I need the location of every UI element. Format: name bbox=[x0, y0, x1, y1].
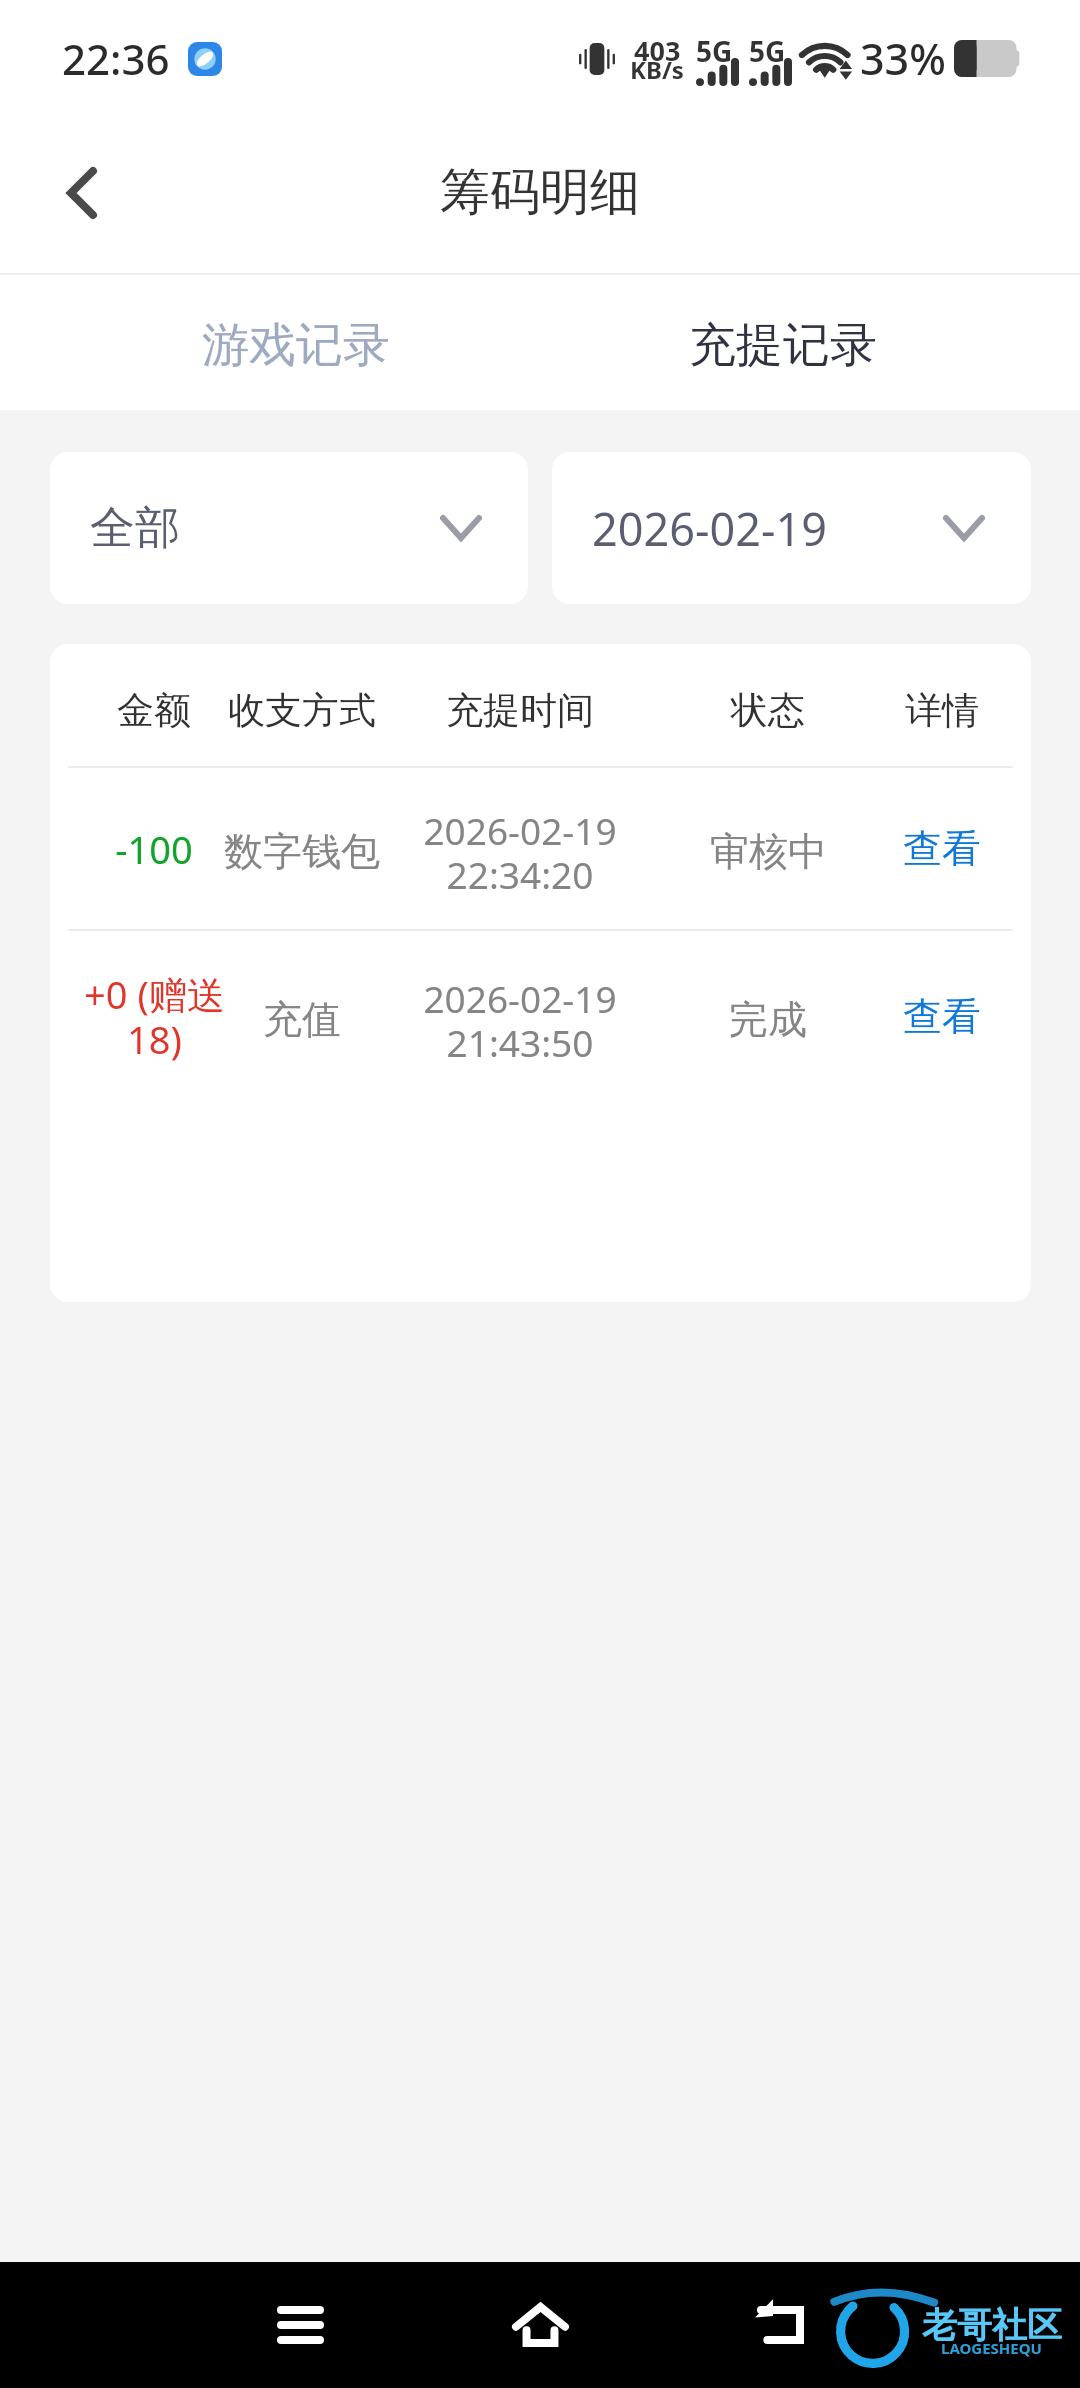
staticText: 数字钱包 bbox=[224, 827, 380, 876]
staticText: 状态 bbox=[731, 687, 805, 734]
staticText: 5G bbox=[696, 32, 733, 70]
button[interactable]: 查看 bbox=[847, 931, 1031, 1101]
staticText: 5G bbox=[749, 32, 786, 70]
staticText: +0 (赠送 18) bbox=[84, 968, 225, 1065]
button[interactable]: Home bbox=[480, 2265, 600, 2385]
staticText: 22:36 bbox=[62, 30, 170, 87]
staticText: KB/s bbox=[630, 53, 684, 86]
button[interactable]: -100 bbox=[50, 768, 1031, 929]
staticText: 查看 bbox=[903, 824, 981, 873]
staticText: 查看 bbox=[903, 992, 981, 1041]
staticText: 403 bbox=[634, 32, 681, 69]
button[interactable]: Back bbox=[2, 112, 162, 273]
staticText: 详情 bbox=[905, 687, 979, 734]
staticText: 充值 bbox=[263, 995, 341, 1044]
staticText: 金额 bbox=[117, 687, 191, 734]
button[interactable]: +0 (赠送 18) bbox=[50, 931, 1031, 1101]
staticText: 充提时间 bbox=[446, 687, 594, 734]
staticText: 老哥社区 bbox=[922, 2303, 1062, 2347]
button[interactable]: 充提记录 bbox=[543, 275, 1023, 410]
staticText: 充提记录 bbox=[689, 316, 877, 375]
button[interactable]: 查看 bbox=[847, 768, 1031, 929]
button[interactable]: Back bbox=[720, 2265, 840, 2385]
staticText: 33% bbox=[860, 29, 946, 88]
staticText: 全部 bbox=[90, 500, 180, 557]
button[interactable]: Recents bbox=[240, 2265, 360, 2385]
staticText: 完成 bbox=[729, 995, 807, 1044]
button[interactable]: 全部 bbox=[50, 452, 528, 604]
staticText: 审核中 bbox=[710, 827, 827, 876]
staticText: LAOGESHEQU bbox=[941, 2338, 1042, 2358]
staticText: 筹码明细 bbox=[440, 161, 640, 224]
button[interactable]: 2026-02-19 bbox=[552, 452, 1031, 604]
staticText: -100 bbox=[115, 823, 193, 875]
staticText: 收支方式 bbox=[228, 687, 376, 734]
staticText: 2026-02-19 bbox=[592, 498, 827, 559]
staticText: 2026-02-19 21:43:50 bbox=[423, 973, 617, 1068]
staticText: 2026-02-19 22:34:20 bbox=[423, 805, 617, 900]
staticText: 游戏记录 bbox=[202, 316, 390, 375]
button[interactable]: 游戏记录 bbox=[56, 275, 536, 410]
